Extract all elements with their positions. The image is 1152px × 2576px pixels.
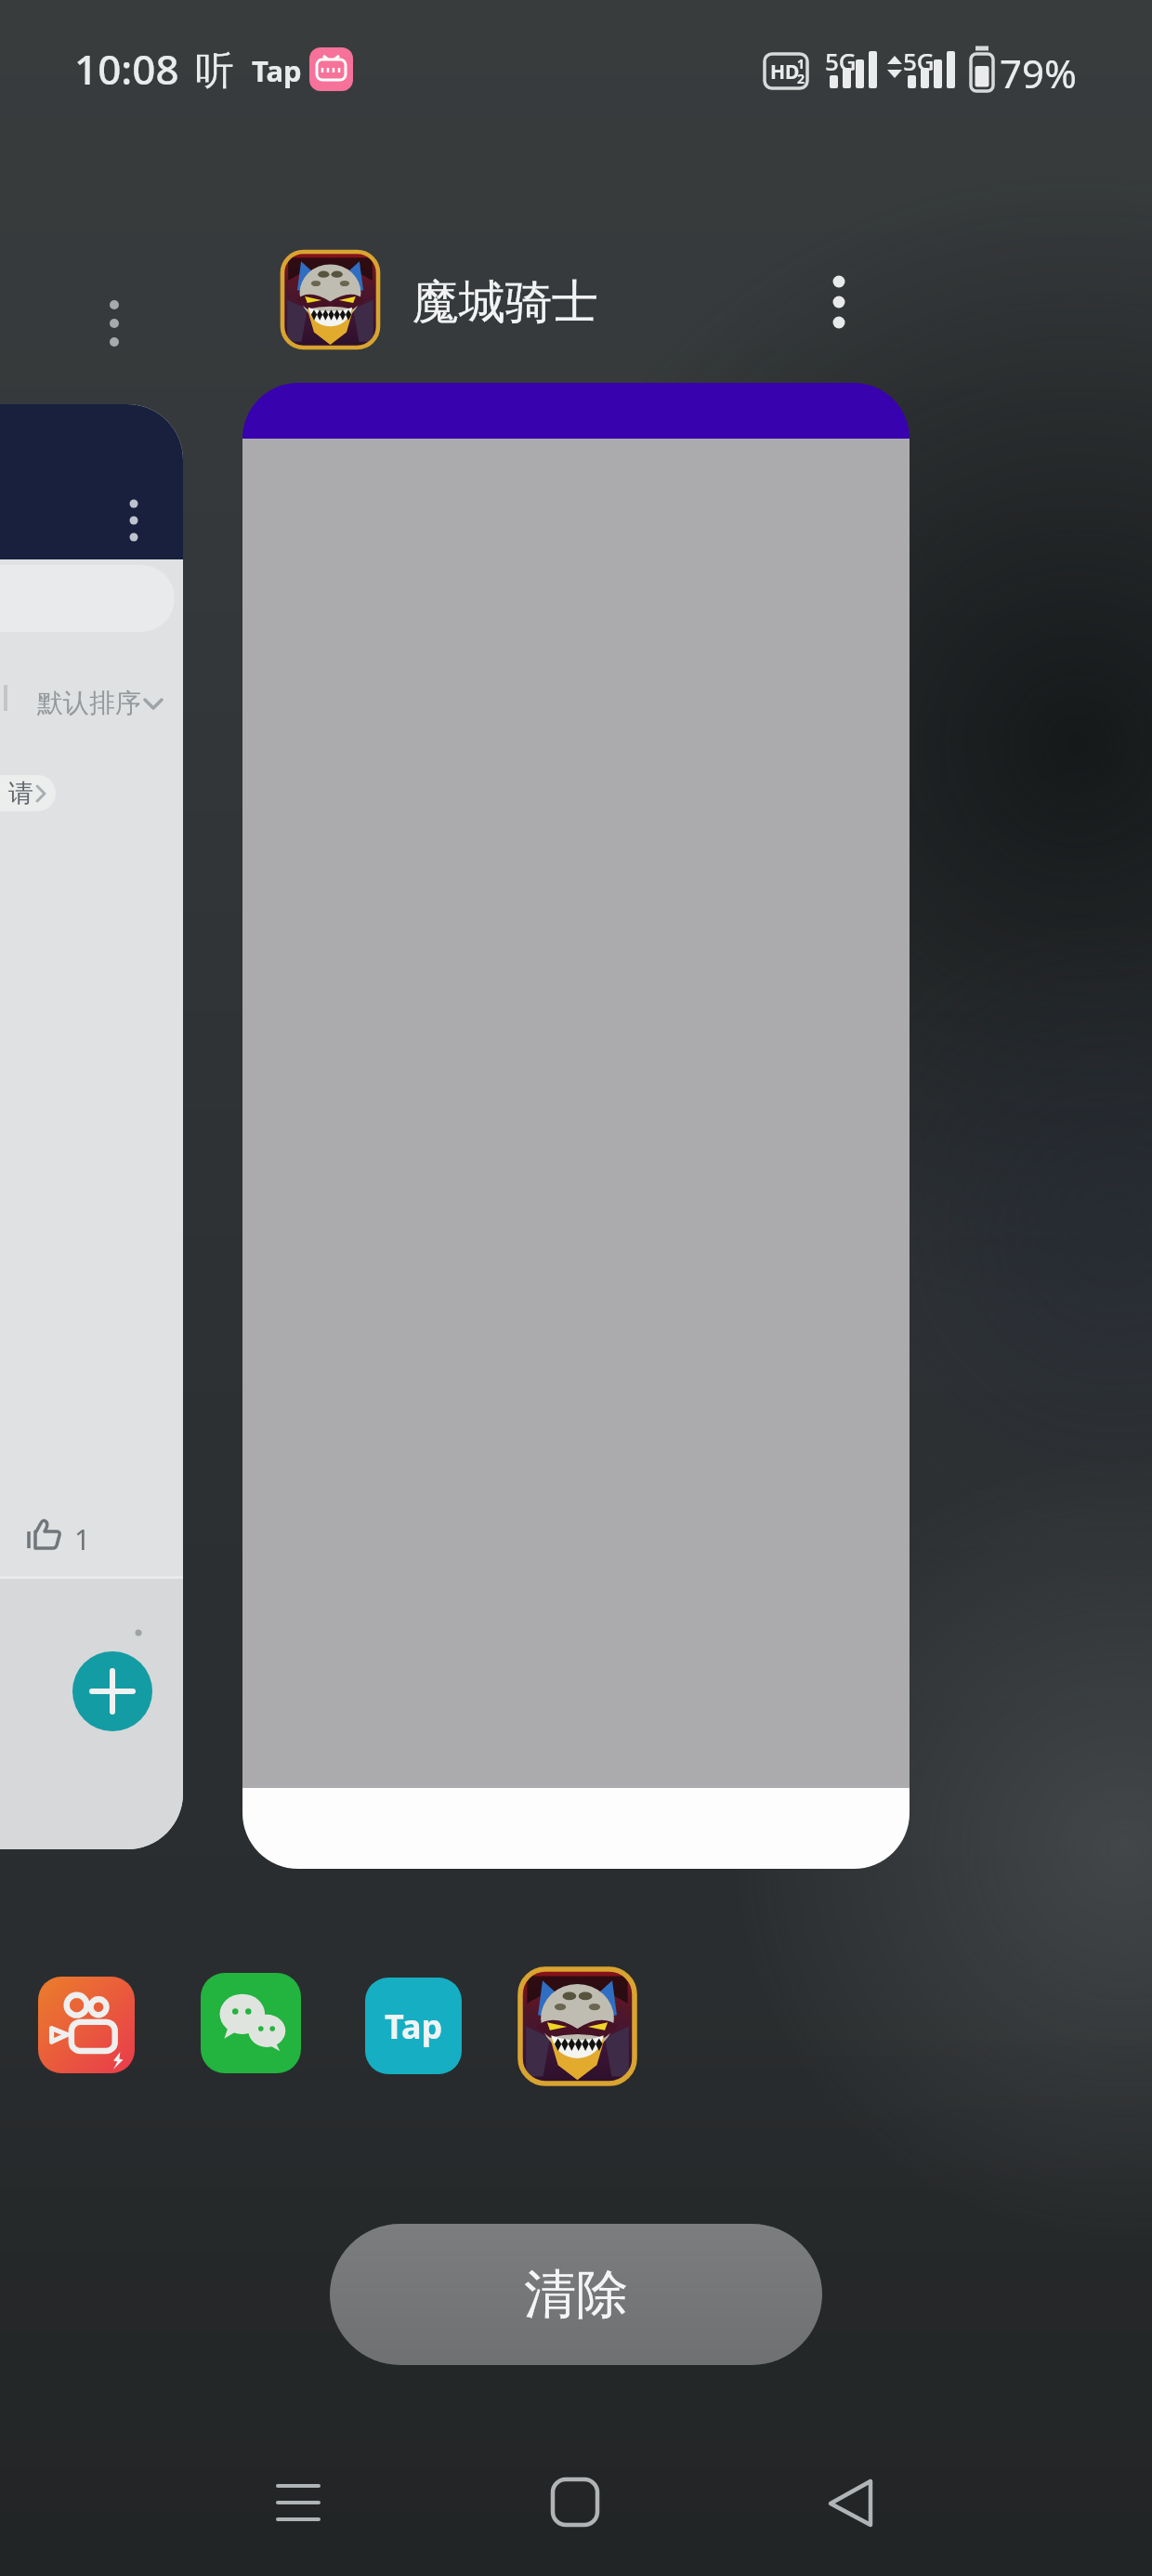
staticText: 清除 (524, 2262, 628, 2328)
staticText: Tap (385, 2004, 443, 2049)
staticText: 10:08 (74, 41, 179, 97)
staticText: 请 (8, 778, 33, 809)
staticText: 5G (825, 45, 857, 77)
staticText: 魔城骑士 (412, 273, 598, 332)
staticText: 听 (195, 46, 234, 96)
staticText: 1 (797, 55, 805, 72)
button[interactable]: Tap (365, 1978, 462, 2074)
staticText: Tap (252, 51, 302, 90)
button[interactable] (520, 1969, 635, 2083)
button[interactable] (72, 1651, 152, 1731)
button[interactable] (538, 2464, 612, 2539)
staticText: 79% (1000, 46, 1077, 99)
staticText: 默认排序 (37, 687, 141, 719)
staticText: 5G (903, 45, 935, 77)
button[interactable] (242, 383, 910, 1869)
button[interactable] (201, 1973, 301, 2073)
staticText: 1 (74, 1520, 91, 1558)
button[interactable]: 默认排序 (0, 404, 183, 1849)
staticText: 2 (797, 70, 805, 87)
staticText: HD (770, 59, 800, 85)
button[interactable] (282, 252, 378, 348)
button[interactable] (261, 2467, 335, 2538)
button[interactable] (812, 2464, 886, 2539)
button[interactable] (822, 268, 856, 335)
button[interactable] (38, 1977, 135, 2073)
button[interactable]: 清除 (330, 2224, 822, 2365)
